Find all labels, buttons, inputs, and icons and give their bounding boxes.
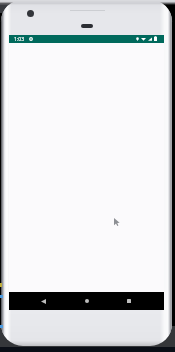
button[interactable]: Recent apps	[117, 292, 141, 310]
button[interactable]: Home	[75, 292, 99, 310]
button[interactable]: Back	[31, 292, 55, 310]
staticText: 1:03	[14, 35, 25, 42]
